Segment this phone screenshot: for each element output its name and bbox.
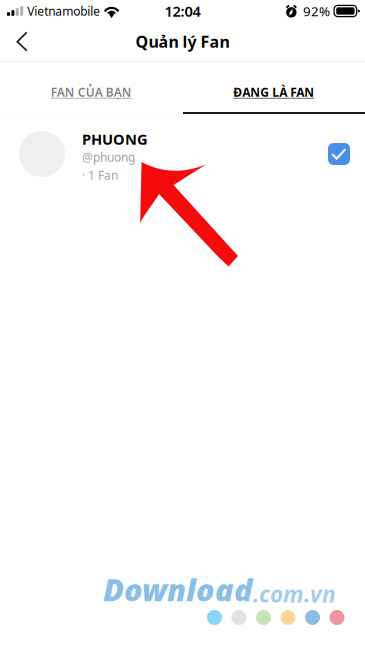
staticText: Quản lý Fan	[135, 31, 229, 52]
staticText: ĐANG LÀ FAN	[233, 84, 314, 100]
staticText: Download	[103, 569, 253, 610]
staticText: PHUONG	[82, 129, 148, 149]
staticText: 92%	[303, 2, 330, 20]
staticText: @phuong	[82, 149, 135, 165]
staticText: FAN CỦA BẠN	[51, 84, 132, 100]
staticText: Vietnamobile	[27, 3, 100, 19]
button[interactable]: FAN CỦA BẠN	[0, 62, 182, 118]
button[interactable]: ĐANG LÀ FAN	[182, 62, 365, 118]
staticText: .com.vn	[253, 579, 336, 609]
staticText: · 1 Fan	[82, 167, 118, 183]
staticText: 12:04	[164, 1, 200, 21]
button[interactable]: PHUONG	[0, 115, 365, 193]
button[interactable]: Back	[0, 22, 44, 61]
